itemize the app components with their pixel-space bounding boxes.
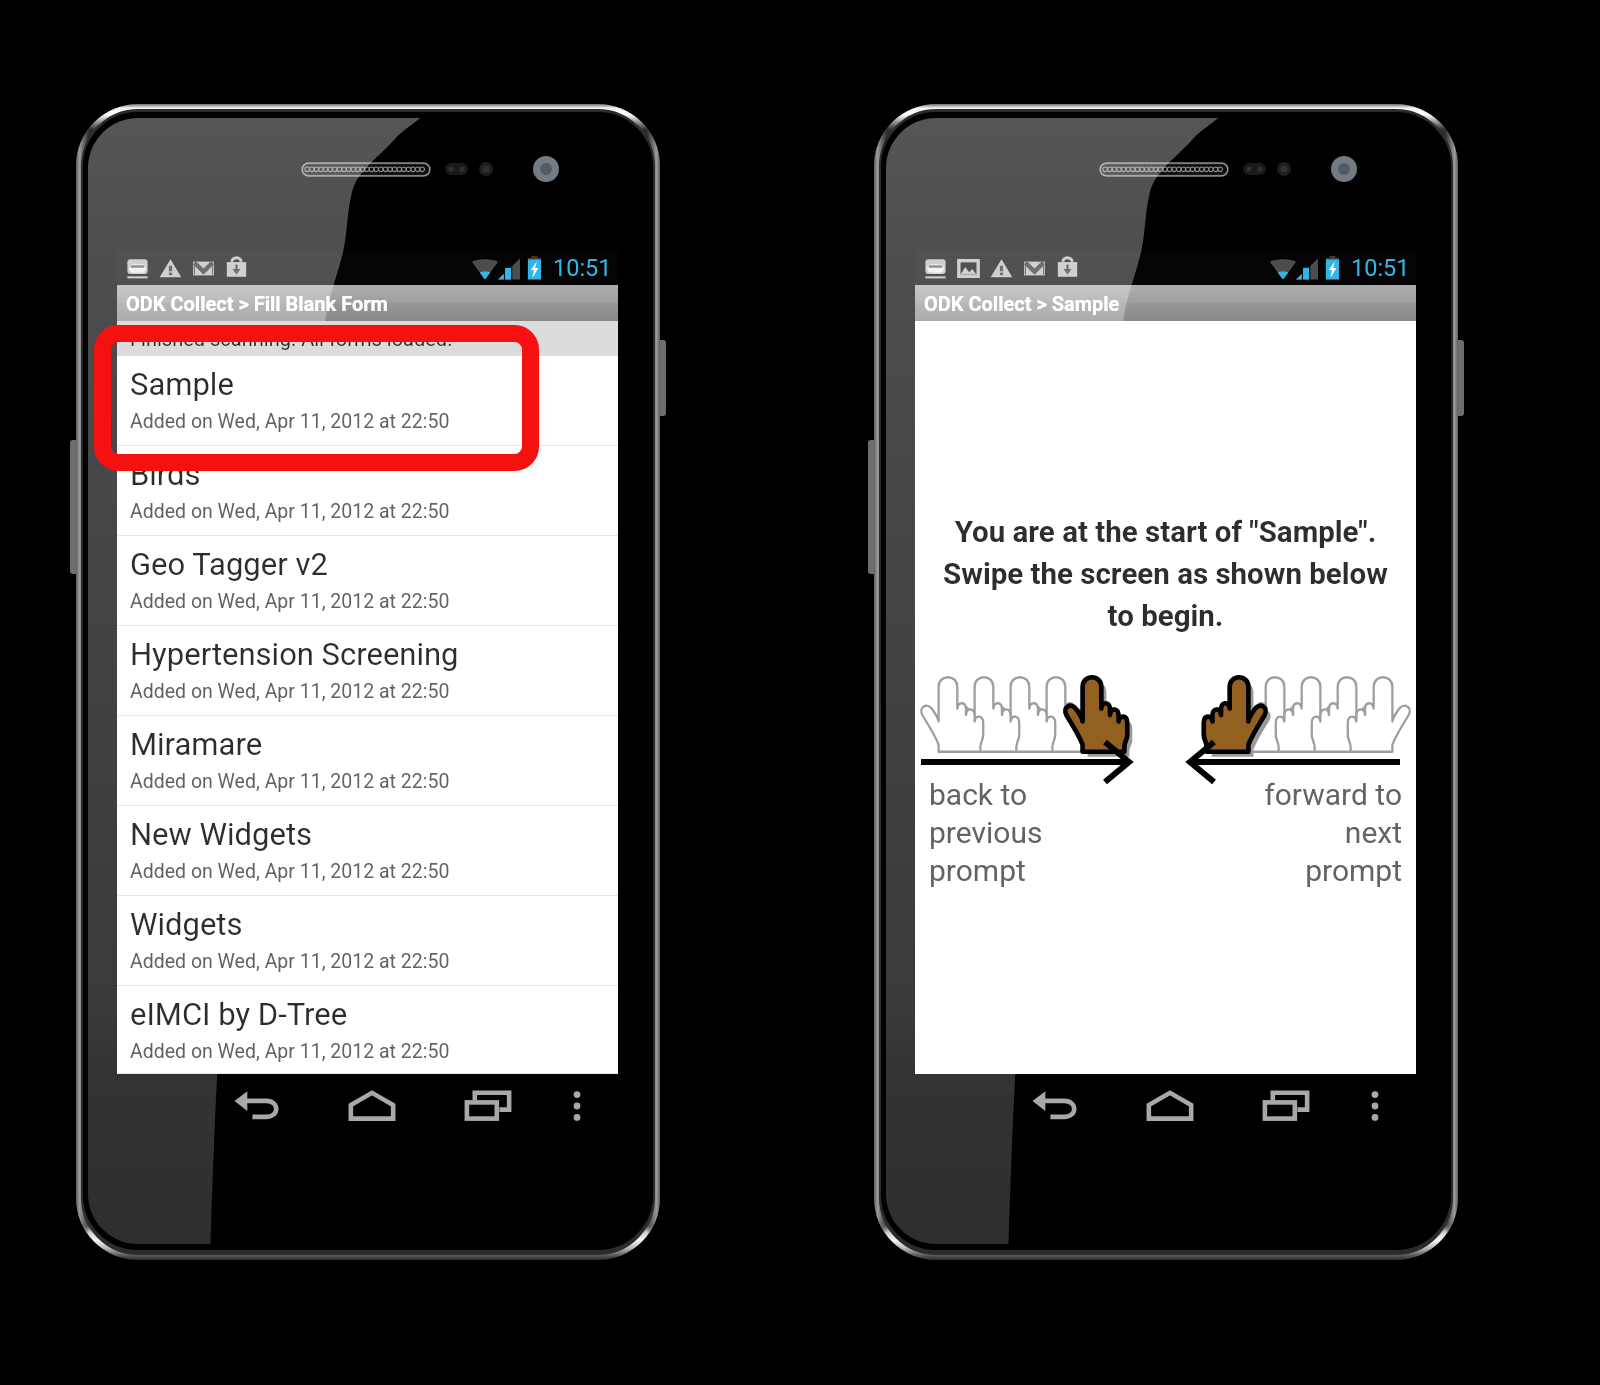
staticText: back to previous prompt xyxy=(929,777,1165,888)
staticText: ODK Collect > Sample xyxy=(924,292,1120,315)
staticText: You are at the start of "Sample". Swipe … xyxy=(915,515,1416,633)
staticText: Added on Wed, Apr 11, 2012 at 22:50 xyxy=(130,950,450,973)
staticText: Added on Wed, Apr 11, 2012 at 22:50 xyxy=(130,860,450,883)
button[interactable]: Miramare xyxy=(117,716,618,806)
staticText: Birds xyxy=(130,456,201,492)
staticText: 10:51 xyxy=(1351,254,1410,282)
button[interactable]: Home xyxy=(330,1074,414,1138)
button[interactable]: More options xyxy=(1347,1074,1403,1138)
button[interactable]: More options xyxy=(549,1074,605,1138)
staticText: ODK Collect > Fill Blank Form xyxy=(126,292,388,315)
button[interactable]: New Widgets xyxy=(117,806,618,896)
button[interactable]: Widgets xyxy=(117,896,618,986)
staticText: forward to next prompt xyxy=(1165,777,1402,888)
staticText: Hypertension Screening xyxy=(130,636,459,672)
button[interactable]: Hypertension Screening xyxy=(117,626,618,716)
staticText: New Widgets xyxy=(130,816,313,852)
button[interactable]: Recent apps xyxy=(1244,1074,1328,1138)
staticText: Widgets xyxy=(130,906,243,942)
staticText: Geo Tagger v2 xyxy=(130,546,328,582)
staticText: Added on Wed, Apr 11, 2012 at 22:50 xyxy=(130,770,450,793)
staticText: 10:51 xyxy=(553,254,612,282)
staticText: Finished scanning. All forms loaded. xyxy=(130,327,453,350)
button[interactable]: eIMCI by D-Tree xyxy=(117,986,618,1074)
staticText: Added on Wed, Apr 11, 2012 at 22:50 xyxy=(130,1040,450,1063)
button[interactable]: Back xyxy=(1013,1074,1097,1138)
staticText: Added on Wed, Apr 11, 2012 at 22:50 xyxy=(130,410,450,433)
button[interactable]: Recent apps xyxy=(446,1074,530,1138)
button[interactable]: Geo Tagger v2 xyxy=(117,536,618,626)
staticText: eIMCI by D-Tree xyxy=(130,996,348,1032)
staticText: Added on Wed, Apr 11, 2012 at 22:50 xyxy=(130,590,450,613)
button[interactable]: Back xyxy=(215,1074,299,1138)
staticText: Added on Wed, Apr 11, 2012 at 22:50 xyxy=(130,500,450,523)
button[interactable]: Home xyxy=(1128,1074,1212,1138)
staticText: Sample xyxy=(130,366,234,402)
staticText: Added on Wed, Apr 11, 2012 at 22:50 xyxy=(130,680,450,703)
button[interactable]: Sample xyxy=(117,356,618,446)
staticText: Miramare xyxy=(130,726,263,762)
button[interactable]: Birds xyxy=(117,446,618,536)
